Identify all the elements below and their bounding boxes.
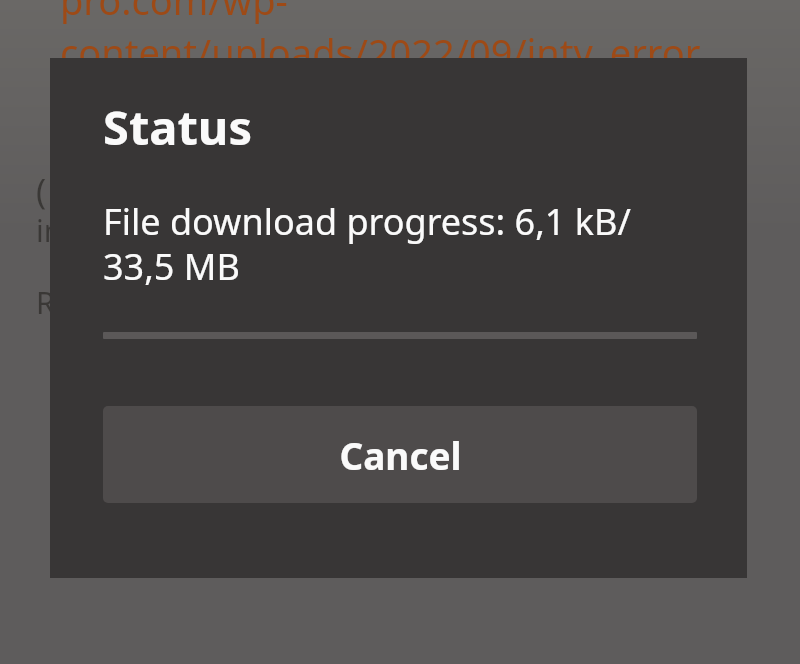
- staticText: R: [36, 282, 55, 323]
- staticText: File download progress: 6,1 kB/33,5 MB: [103, 197, 697, 290]
- staticText: (: [36, 168, 47, 214]
- staticText: in: [36, 210, 63, 251]
- staticText: pro.com/wp-: [60, 0, 288, 26]
- button[interactable]: Cancel: [103, 406, 697, 503]
- staticText: Cancel: [339, 430, 462, 480]
- staticText: Status: [103, 95, 252, 159]
- staticText: content/uploads/2022/09/intv_error: [60, 26, 701, 78]
